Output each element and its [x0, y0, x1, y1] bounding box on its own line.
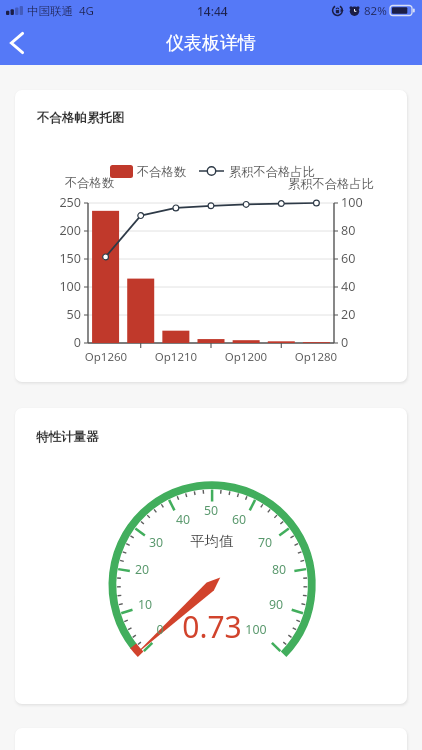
staticText: 200 [35, 222, 81, 239]
staticText: 90 [256, 596, 296, 613]
staticText: 4G [79, 3, 94, 19]
staticText: 40 [341, 278, 381, 295]
staticText: 仪表板详情 [166, 32, 256, 55]
staticText: Op1280 [286, 349, 346, 365]
staticText: 50 [35, 306, 81, 323]
staticText: Op1260 [76, 349, 136, 365]
staticText: 0.73 [152, 606, 272, 647]
staticText: 不合格数 [137, 164, 187, 179]
button[interactable]: Back [2, 21, 32, 65]
staticText: 中国联通 [27, 4, 73, 18]
staticText: 30 [136, 534, 176, 551]
staticText: 0 [341, 334, 381, 351]
staticText: 0 [140, 621, 180, 638]
staticText: 100 [341, 194, 381, 211]
staticText: 特性计量器 [36, 429, 99, 445]
staticText: 不合格数 [65, 175, 115, 190]
staticText: 80 [341, 222, 381, 239]
staticText: Op1210 [146, 349, 206, 365]
staticText: 40 [163, 511, 203, 528]
staticText: 累积不合格占比 [229, 164, 316, 179]
staticText: 150 [35, 250, 81, 267]
staticText: 14:44 [197, 3, 228, 19]
staticText: 82% [364, 3, 387, 19]
staticText: 100 [236, 621, 276, 638]
staticText: 60 [341, 250, 381, 267]
staticText: 不合格帕累托图 [37, 110, 125, 126]
staticText: 60 [219, 511, 259, 528]
staticText: Op1200 [216, 349, 276, 365]
button[interactable]: 特性计量器 [15, 408, 407, 704]
staticText: 平均值 [172, 532, 252, 550]
staticText: 累积不合格占比 [288, 176, 375, 191]
staticText: 20 [341, 306, 381, 323]
staticText: 0 [35, 334, 81, 351]
staticText: 250 [35, 194, 81, 211]
staticText: 10 [125, 596, 165, 613]
staticText: 100 [35, 278, 81, 295]
button[interactable]: 不合格帕累托图 [15, 90, 407, 382]
staticText: 20 [122, 561, 162, 578]
staticText: 50 [191, 502, 231, 519]
staticText: 70 [245, 534, 285, 551]
staticText: 80 [259, 561, 299, 578]
